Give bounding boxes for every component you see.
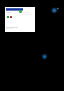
button[interactable]: Reject [10, 16, 12, 18]
button[interactable]: Status [5, 7, 35, 32]
other: Status [19, 10, 22, 13]
